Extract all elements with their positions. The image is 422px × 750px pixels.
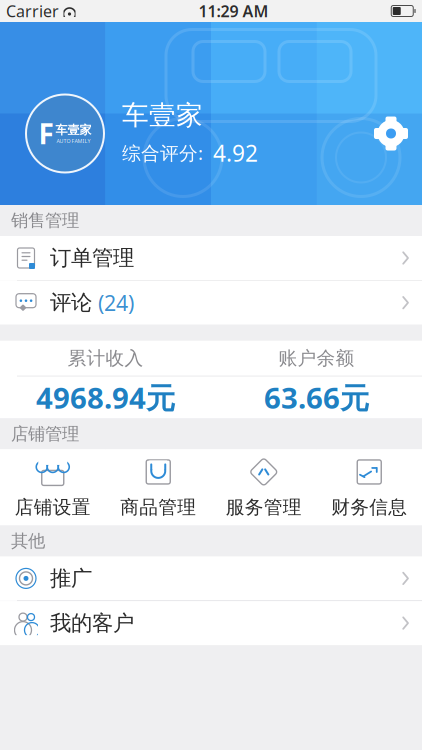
staticText: 综合评分: [122,140,203,165]
staticText: (24) [92,288,134,317]
staticText: 累计收入 [67,347,143,370]
staticText: 财务信息 [331,496,407,519]
staticText: 4968.94元 [36,378,175,417]
button[interactable]: 我的客户 [0,601,422,645]
staticText: 11:29 AM [198,0,268,22]
staticText: 评论 [50,290,92,316]
staticText: AUTO FAMILY [56,137,90,144]
staticText: 账户余额 [278,347,354,370]
staticText: 销售管理 [11,210,79,231]
staticText: 店铺管理 [11,423,79,445]
button[interactable]: 店铺设置 [0,449,105,525]
staticText: 服务管理 [226,496,302,519]
button[interactable]: 财务信息 [316,449,422,525]
staticText: 订单管理 [50,245,134,271]
staticText: 商品管理 [120,496,196,519]
staticText: 车壹家 [122,99,203,132]
button[interactable]: 评论 [0,281,422,325]
staticText: 推广 [50,565,92,591]
staticText: 我的客户 [50,610,134,636]
staticText: 其他 [11,530,45,552]
staticText: 63.66元 [264,378,369,417]
staticText: 车壹家 [55,123,91,137]
button[interactable]: 服务管理 [211,449,316,525]
button[interactable]: 商品管理 [105,449,211,525]
button[interactable]: 设置 [369,111,413,155]
button[interactable]: 订单管理 [0,236,422,280]
staticText: Carrier [6,0,59,22]
button[interactable]: 推广 [0,556,422,600]
staticText: F [38,115,53,152]
staticText: 4.92 [213,138,258,168]
staticText: 店铺设置 [15,496,91,519]
